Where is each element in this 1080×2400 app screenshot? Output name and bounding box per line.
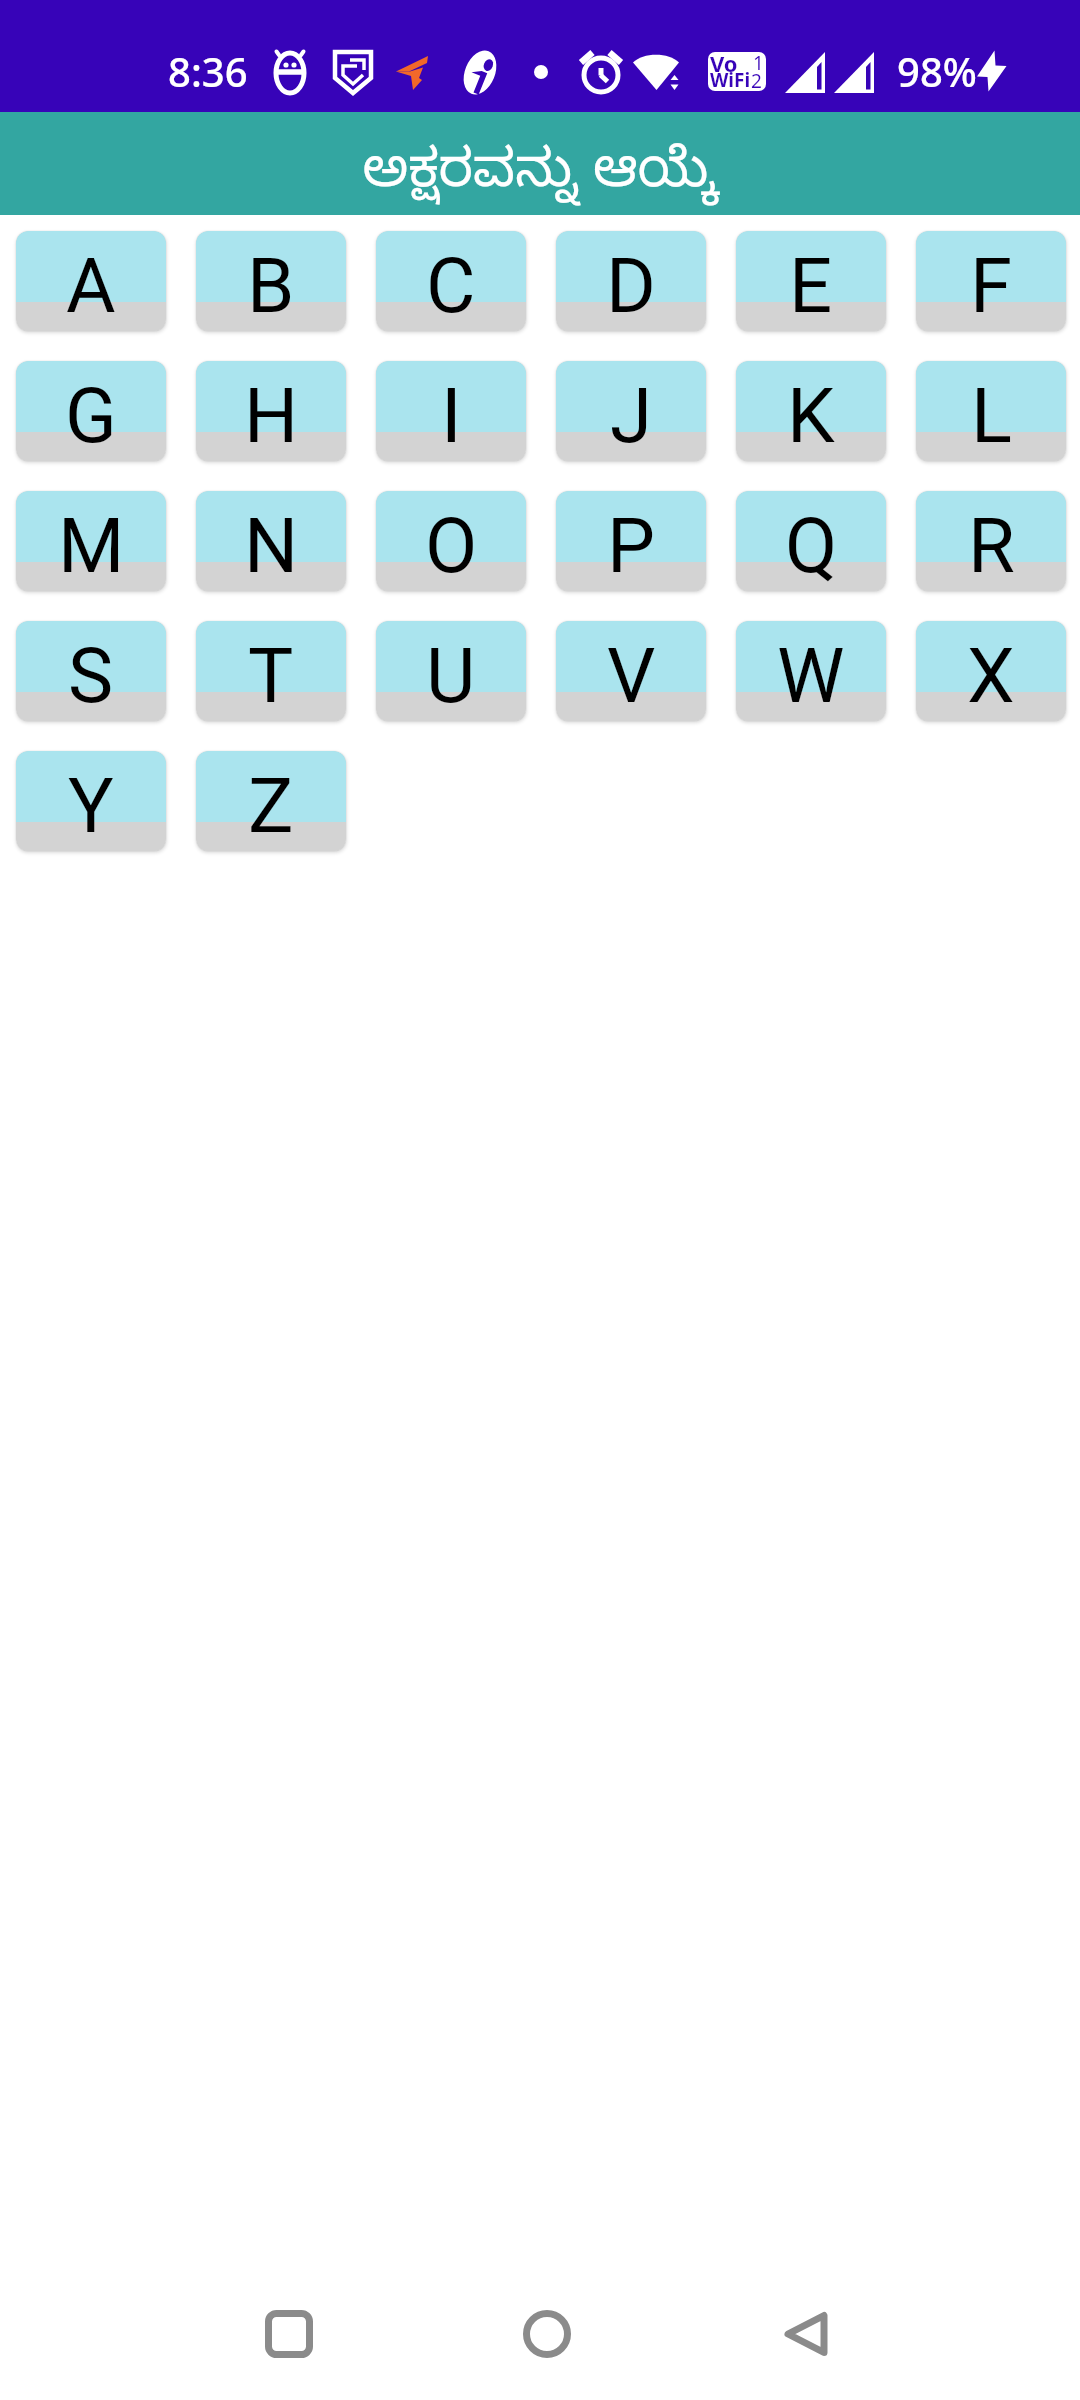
button[interactable]: U — [376, 621, 526, 721]
staticText: 8:36 — [168, 44, 248, 98]
staticText: L — [971, 371, 1012, 460]
staticText: K — [787, 371, 835, 460]
staticText: 1 — [753, 50, 764, 76]
staticText: U — [426, 631, 476, 720]
staticText: C — [426, 241, 476, 330]
staticText: F — [970, 241, 1013, 330]
button[interactable]: O — [376, 491, 526, 591]
staticText: P — [607, 501, 655, 590]
button[interactable]: J — [556, 361, 706, 461]
button[interactable]: Q — [736, 491, 886, 591]
staticText: B — [247, 241, 295, 330]
staticText: M — [58, 501, 125, 590]
button[interactable]: V — [556, 621, 706, 721]
staticText: J — [610, 371, 652, 460]
button[interactable]: N — [196, 491, 346, 591]
button[interactable]: A — [16, 231, 166, 331]
button[interactable]: F — [916, 231, 1066, 331]
button[interactable]: X — [916, 621, 1066, 721]
staticText: G — [65, 371, 117, 460]
button[interactable]: R — [916, 491, 1066, 591]
button[interactable]: Z — [196, 751, 346, 851]
button[interactable]: P — [556, 491, 706, 591]
button[interactable]: Home — [503, 2290, 591, 2378]
button[interactable]: E — [736, 231, 886, 331]
staticText: ಅಕ್ಷರವನ್ನು ಆಯ್ಕೆ — [362, 143, 718, 214]
staticText: W — [777, 631, 845, 720]
staticText: 2 — [751, 68, 762, 94]
button[interactable]: H — [196, 361, 346, 461]
button[interactable]: G — [16, 361, 166, 461]
button[interactable]: Back — [762, 2290, 850, 2378]
staticText: V — [607, 631, 656, 720]
button[interactable]: I — [376, 361, 526, 461]
staticText: I — [441, 371, 462, 460]
button[interactable]: C — [376, 231, 526, 331]
button[interactable]: B — [196, 231, 346, 331]
button[interactable]: D — [556, 231, 706, 331]
button[interactable]: Y — [16, 751, 166, 851]
staticText: WiFi — [710, 67, 751, 93]
button[interactable]: W — [736, 621, 886, 721]
staticText: Y — [68, 761, 114, 850]
button[interactable]: S — [16, 621, 166, 721]
staticText: R — [968, 501, 1015, 590]
staticText: Q — [785, 501, 838, 590]
staticText: A — [66, 241, 116, 330]
staticText: H — [244, 371, 299, 460]
button[interactable]: Recent apps — [245, 2290, 333, 2378]
staticText: 98% — [897, 44, 977, 98]
staticText: S — [68, 631, 114, 720]
staticText: O — [425, 501, 478, 590]
staticText: E — [789, 241, 833, 330]
button[interactable]: K — [736, 361, 886, 461]
staticText: Vo — [710, 48, 738, 78]
staticText: T — [248, 631, 294, 720]
button[interactable]: M — [16, 491, 166, 591]
button[interactable]: T — [196, 621, 346, 721]
button[interactable]: L — [916, 361, 1066, 461]
staticText: N — [244, 501, 299, 590]
staticText: X — [967, 631, 1015, 720]
staticText: D — [606, 241, 656, 330]
staticText: Z — [248, 761, 294, 850]
